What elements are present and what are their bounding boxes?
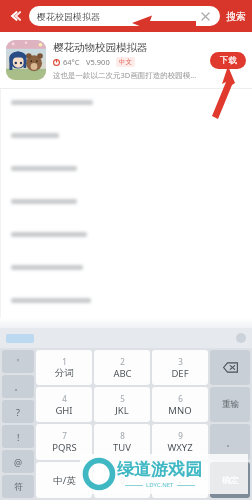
button[interactable]: 下载	[210, 52, 246, 69]
staticText: JKL	[115, 404, 129, 417]
staticText: 樱花校园模拟器	[37, 11, 199, 22]
staticText: 3	[178, 356, 183, 367]
button[interactable]: Back	[4, 5, 26, 27]
staticText: 这也是一款以二次元3D画面打造的校园模…	[53, 70, 197, 80]
button[interactable]: Keyboard settings	[236, 333, 246, 343]
staticText: 中文	[119, 58, 132, 66]
staticText: !	[17, 431, 20, 443]
button[interactable]: Backspace	[210, 350, 250, 385]
staticText: 7	[62, 430, 67, 441]
staticText: 搜索	[226, 10, 246, 23]
staticText: 64°C	[63, 57, 80, 67]
staticText: MNO	[168, 404, 192, 417]
staticText: '	[17, 356, 20, 368]
staticText: WXYZ	[167, 441, 193, 454]
button[interactable]: 6	[152, 387, 208, 422]
button[interactable]: 樱花校园模拟器	[29, 6, 220, 26]
staticText: 绿道游戏园	[117, 459, 202, 480]
button[interactable]: 0	[94, 462, 150, 498]
staticText: @	[14, 456, 23, 468]
staticText: ?	[16, 406, 20, 418]
button[interactable]: 符	[2, 475, 34, 498]
staticText: 4	[62, 393, 67, 404]
button[interactable]: ，	[152, 462, 208, 498]
button[interactable]: @	[2, 450, 34, 473]
button[interactable]: 5	[94, 387, 150, 422]
staticText: 分词	[55, 367, 74, 379]
button[interactable]: 。	[210, 424, 250, 460]
staticText: 2	[120, 356, 125, 367]
button[interactable]: '	[2, 350, 34, 373]
staticText: 8	[120, 430, 125, 441]
staticText: 樱花动物校园模拟器	[53, 41, 148, 54]
button[interactable]	[6, 334, 34, 343]
staticText: 重输	[222, 399, 239, 410]
button[interactable]: 7	[36, 424, 92, 460]
button[interactable]: 樱花动物校园模拟器	[0, 32, 252, 88]
staticText: ，	[175, 474, 185, 486]
button[interactable]: 8	[94, 424, 150, 460]
staticText: 0	[120, 475, 125, 486]
staticText: 确定	[222, 475, 239, 486]
button[interactable]: 搜索	[224, 4, 248, 28]
button[interactable]: 。	[2, 375, 34, 398]
staticText: 1	[62, 356, 67, 367]
button[interactable]: 中/英	[36, 462, 92, 498]
staticText: 6	[178, 393, 183, 404]
staticText: PQRS	[52, 441, 77, 454]
button[interactable]: 3	[152, 350, 208, 385]
button[interactable]: Clear	[199, 10, 212, 23]
button[interactable]: 4	[36, 387, 92, 422]
button[interactable]: !	[2, 425, 34, 448]
staticText: GHI	[55, 404, 73, 417]
button[interactable]: 确定	[210, 462, 250, 498]
staticText: 中/英	[53, 474, 76, 487]
staticText: LDYC.NET	[146, 481, 174, 489]
button[interactable]: 9	[152, 424, 208, 460]
staticText: 9	[178, 430, 183, 441]
staticText: 。	[14, 381, 23, 392]
button[interactable]: 2	[94, 350, 150, 385]
button[interactable]: 1	[36, 350, 92, 385]
staticText: V5.900	[86, 57, 110, 67]
staticText: 下载	[220, 55, 237, 66]
staticText: 。	[226, 437, 235, 448]
staticText: TUV	[113, 441, 131, 454]
button[interactable]: 重输	[210, 387, 250, 422]
staticText: DEF	[171, 367, 189, 380]
staticText: 5	[120, 393, 125, 404]
button[interactable]: ?	[2, 400, 34, 423]
staticText: ABC	[113, 367, 132, 380]
staticText: 符	[14, 481, 23, 492]
